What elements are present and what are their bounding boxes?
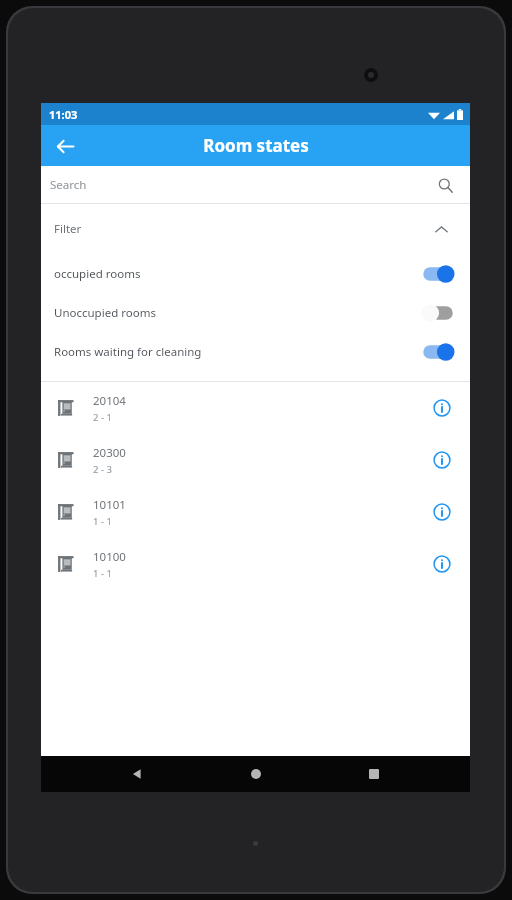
staticText: 10101 (93, 497, 126, 513)
staticText: 20104 (93, 393, 126, 409)
staticText: occupied rooms (54, 266, 420, 282)
other: Collapse filter (430, 218, 452, 240)
staticText: Search (50, 177, 87, 193)
button[interactable]: Filter (41, 204, 470, 254)
other: Search (434, 174, 456, 196)
button[interactable]: 10100 (41, 538, 470, 590)
button[interactable]: Unoccupied rooms (41, 293, 470, 332)
button[interactable]: Rooms waiting for cleaning (41, 332, 470, 371)
button[interactable]: occupied rooms (41, 254, 470, 293)
button[interactable]: Back (47, 128, 83, 164)
staticText: Room states (203, 134, 309, 157)
staticText: Unoccupied rooms (54, 305, 420, 321)
button[interactable]: Back (115, 756, 159, 792)
staticText: 2 - 3 (93, 463, 112, 476)
button[interactable]: Home (234, 756, 278, 792)
staticText: 2 - 1 (93, 411, 112, 424)
button[interactable]: Search (41, 166, 470, 203)
staticText: Rooms waiting for cleaning (54, 344, 420, 360)
button[interactable]: Room info (429, 395, 455, 421)
button[interactable]: Room info (429, 447, 455, 473)
staticText: 1 - 1 (93, 567, 112, 580)
button[interactable]: 20104 (41, 382, 470, 434)
button[interactable]: Room info (429, 551, 455, 577)
button[interactable]: 10101 (41, 486, 470, 538)
button[interactable]: Room info (429, 499, 455, 525)
staticText: Filter (54, 221, 82, 237)
staticText: 20300 (93, 445, 126, 461)
staticText: 10100 (93, 549, 126, 565)
button[interactable]: Recent apps (352, 756, 396, 792)
button[interactable]: 20300 (41, 434, 470, 486)
staticText: 1 - 1 (93, 515, 112, 528)
staticText: 11:03 (49, 107, 78, 122)
